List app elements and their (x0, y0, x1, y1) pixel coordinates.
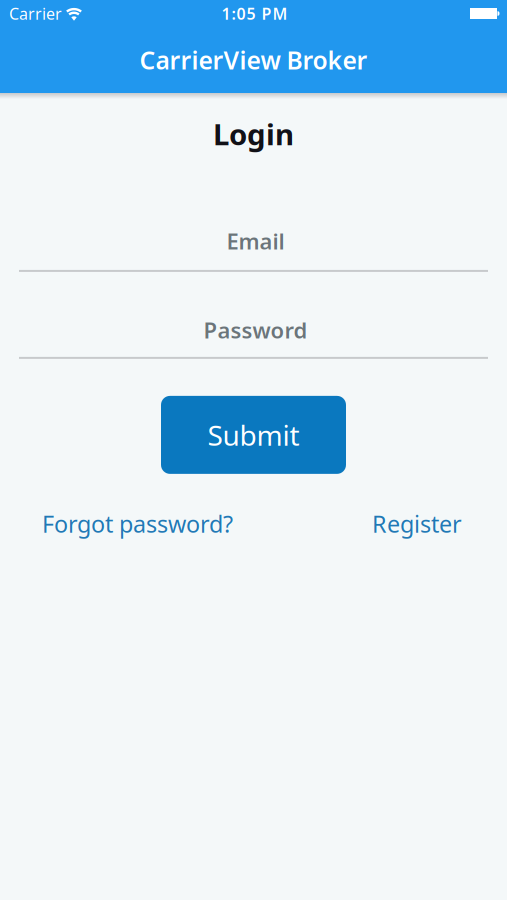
button[interactable]: Forgot password? (42, 508, 233, 540)
staticText: Forgot password? (42, 508, 233, 540)
button[interactable]: Password (19, 315, 488, 359)
staticText: CarrierView Broker (139, 43, 367, 77)
staticText: 1:05 PM (221, 3, 287, 24)
button[interactable]: Submit (161, 396, 346, 474)
staticText: Login (213, 114, 294, 154)
button[interactable]: Register (372, 508, 462, 540)
staticText: Submit (207, 416, 299, 454)
button[interactable]: Email (19, 226, 488, 272)
staticText: Email (226, 226, 284, 256)
staticText: Register (372, 508, 462, 540)
staticText: Password (203, 315, 307, 345)
staticText: Carrier (9, 3, 62, 24)
